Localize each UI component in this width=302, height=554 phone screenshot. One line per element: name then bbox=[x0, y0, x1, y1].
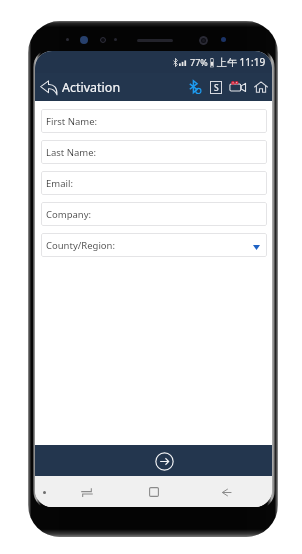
button[interactable]: Activation bbox=[35, 75, 124, 100]
button[interactable]: Recents bbox=[76, 481, 98, 503]
staticText: County/Region: bbox=[46, 239, 116, 252]
staticText: S bbox=[214, 82, 219, 94]
button[interactable]: Company: bbox=[41, 202, 267, 226]
staticText: 上午 11:19 bbox=[217, 55, 266, 69]
button[interactable]: First Name: bbox=[41, 109, 267, 133]
staticText: 77% bbox=[190, 56, 208, 68]
button[interactable]: Home bbox=[250, 75, 271, 99]
button[interactable]: Bluetooth scan bbox=[185, 75, 205, 99]
button[interactable]: Email: bbox=[41, 171, 267, 195]
button[interactable]: Home bbox=[143, 481, 165, 503]
button[interactable]: Scan code bbox=[206, 75, 226, 99]
staticText: Email: bbox=[46, 177, 73, 190]
staticText: Last Name: bbox=[46, 146, 97, 159]
button[interactable]: Back bbox=[215, 481, 237, 503]
button[interactable]: Record video bbox=[227, 75, 249, 99]
button[interactable]: Next bbox=[152, 449, 176, 473]
button[interactable]: County/Region: bbox=[41, 233, 267, 257]
staticText: Company: bbox=[46, 208, 92, 221]
button[interactable]: Last Name: bbox=[41, 140, 267, 164]
staticText: Activation bbox=[62, 79, 121, 96]
staticText: First Name: bbox=[46, 115, 98, 128]
